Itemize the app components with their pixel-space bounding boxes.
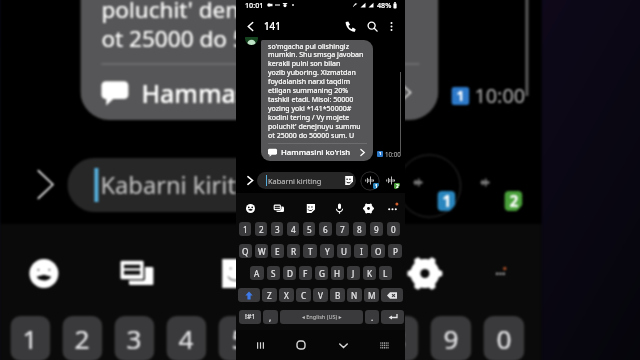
staticText: J <box>352 268 355 279</box>
button[interactable]: Enter <box>381 310 404 324</box>
button[interactable]: Home <box>292 336 310 354</box>
button[interactable]: 0 <box>483 316 524 360</box>
staticText: Kabarni kiriting <box>268 176 322 186</box>
button[interactable]: 7 <box>336 222 349 236</box>
button[interactable]: Send with SIM 2 <box>464 154 528 218</box>
staticText: 9 <box>374 224 379 235</box>
button[interactable]: J <box>347 266 360 280</box>
button[interactable]: so'mgacha pul olishingiz mumkin. Shu sms… <box>80 0 438 120</box>
button[interactable]: G <box>315 266 328 280</box>
button[interactable]: Backspace <box>381 288 403 302</box>
staticText: W <box>258 246 266 257</box>
button[interactable]: More <box>383 199 401 217</box>
button[interactable]: Send with SIM 1 <box>397 154 461 218</box>
button[interactable]: R <box>287 244 300 258</box>
button[interactable]: 8 <box>353 222 366 236</box>
staticText: 4 <box>178 321 194 357</box>
button[interactable]: Y <box>320 244 334 258</box>
button[interactable]: Send with SIM 2 <box>381 171 401 191</box>
button[interactable]: 1 <box>239 222 251 236</box>
button[interactable]: Voice input <box>330 199 348 217</box>
button[interactable]: 1 <box>10 316 50 360</box>
button[interactable]: Search <box>364 18 381 35</box>
button[interactable]: Change keyboard <box>375 336 393 354</box>
button[interactable]: N <box>347 288 362 302</box>
button[interactable]: Settings <box>359 199 377 217</box>
button[interactable]: Hammasini ko'rish <box>101 75 419 110</box>
button[interactable]: 2 <box>62 316 102 360</box>
button[interactable]: Expand toolbar <box>19 159 70 210</box>
staticText: O <box>375 246 382 257</box>
button[interactable]: Emoji <box>14 244 72 302</box>
button[interactable]: 9 <box>430 316 471 360</box>
staticText: Hammasini ko'rish <box>141 76 363 110</box>
button[interactable]: Hammasini ko'rish <box>268 147 367 158</box>
button[interactable]: 4 <box>166 316 206 360</box>
button[interactable]: Hide keyboard <box>334 336 352 354</box>
staticText: 10:01 <box>245 0 264 10</box>
button[interactable]: 6 <box>271 316 312 360</box>
button[interactable]: 3 <box>114 316 154 360</box>
button[interactable]: D <box>283 266 296 280</box>
button[interactable]: 8 <box>377 316 418 360</box>
button[interactable]: 4 <box>287 222 299 236</box>
button[interactable]: , <box>263 310 278 324</box>
button[interactable]: Stickers <box>106 244 164 302</box>
button[interactable]: 7 <box>324 316 365 360</box>
button[interactable]: I <box>354 244 368 258</box>
button[interactable]: 0 <box>387 222 400 236</box>
button[interactable]: Settings <box>395 244 453 302</box>
button[interactable]: 3 <box>271 222 283 236</box>
button[interactable]: O <box>371 244 385 258</box>
staticText: Hammasini ko'rish <box>281 147 351 158</box>
button[interactable]: !#1 <box>239 310 261 324</box>
button[interactable]: Shift <box>238 288 260 302</box>
button[interactable]: 5 <box>303 222 315 236</box>
staticText: F <box>303 268 308 279</box>
button[interactable]: L <box>379 266 392 280</box>
button[interactable]: Stickers <box>269 199 287 217</box>
button[interactable]: H <box>331 266 344 280</box>
button[interactable]: F <box>299 266 312 280</box>
button[interactable]: C <box>296 288 311 302</box>
button[interactable]: Send with SIM 1 <box>360 171 380 191</box>
button[interactable]: Stickers and GIFs <box>206 244 264 302</box>
button[interactable]: 9 <box>370 222 383 236</box>
button[interactable]: Call <box>342 18 359 35</box>
button[interactable]: 2 <box>255 222 267 236</box>
button[interactable]: P <box>388 244 402 258</box>
button[interactable]: T <box>303 244 317 258</box>
button[interactable]: Q <box>239 244 252 258</box>
button[interactable]: Recent apps <box>251 336 269 354</box>
button[interactable]: so'mgacha pul olishingiz mumkin. Shu sms… <box>261 40 373 161</box>
button[interactable]: Kabarni kiriting <box>257 172 356 189</box>
button[interactable]: S <box>267 266 280 280</box>
staticText: C <box>301 290 307 301</box>
button[interactable]: K <box>363 266 376 280</box>
button[interactable]: Emoji <box>241 199 259 217</box>
button[interactable]: 6 <box>319 222 332 236</box>
button[interactable]: Stickers and GIFs <box>301 199 319 217</box>
staticText: 2 <box>74 321 90 357</box>
button[interactable]: More options <box>384 19 399 34</box>
staticText: 1 <box>243 224 248 235</box>
button[interactable]: E <box>271 244 284 258</box>
button[interactable]: 5 <box>218 316 259 360</box>
button[interactable]: M <box>364 288 379 302</box>
button[interactable]: Space <box>280 310 363 324</box>
button[interactable]: Expand toolbar <box>242 172 258 188</box>
button[interactable]: W <box>255 244 268 258</box>
button[interactable]: Z <box>262 288 277 302</box>
staticText: T <box>308 246 313 257</box>
button[interactable]: Voice input <box>301 244 359 302</box>
button[interactable]: . <box>365 310 379 324</box>
button[interactable]: A <box>250 266 264 280</box>
button[interactable]: V <box>313 288 328 302</box>
button[interactable]: X <box>279 288 294 302</box>
button[interactable]: More <box>471 244 529 302</box>
button[interactable]: B <box>330 288 345 302</box>
staticText: 4 <box>291 224 296 235</box>
button[interactable]: U <box>337 244 351 258</box>
button[interactable]: Back <box>242 18 259 35</box>
button[interactable]: Kabarni kiriting <box>67 158 384 212</box>
